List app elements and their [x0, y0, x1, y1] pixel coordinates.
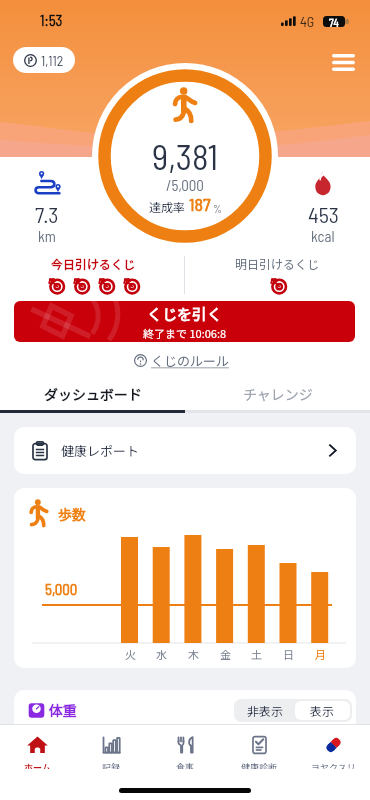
button[interactable]: 体重 [14, 690, 356, 750]
staticText: ヨヤクスリ [311, 761, 356, 769]
button[interactable]: 食事 [148, 735, 222, 769]
staticText: くじのルール [151, 351, 230, 370]
staticText: 火 [125, 646, 136, 662]
button[interactable]: 表示 [295, 701, 350, 720]
staticText: 日 [283, 646, 294, 662]
staticText: km [38, 227, 56, 245]
staticText: 4G [300, 13, 315, 28]
staticText: ホーム [24, 761, 51, 769]
staticText: チャレンジ [243, 384, 313, 404]
staticText: 歩数 [58, 504, 86, 524]
staticText: % [213, 202, 222, 215]
button[interactable]: ホーム [0, 735, 74, 769]
staticText: 木 [188, 646, 199, 662]
staticText: 453 [308, 201, 339, 227]
staticText: 土 [251, 646, 262, 662]
staticText: 体重 [49, 700, 77, 720]
button[interactable]: 健康診断 [222, 735, 296, 769]
staticText: 187 [189, 193, 211, 215]
staticText: 終了まで 10:06:8 [143, 325, 227, 341]
staticText: 7.3 [35, 201, 59, 227]
staticText: 非表示 [247, 702, 284, 719]
staticText: 1:53 [40, 11, 63, 28]
staticText: 明日引けるくじ [235, 255, 320, 272]
staticText: 5,000 [45, 580, 78, 598]
button[interactable]: くじのルール [134, 351, 230, 370]
staticText: 食事 [176, 761, 195, 769]
staticText: 月 [315, 646, 326, 662]
staticText: 記録 [102, 761, 121, 769]
button[interactable]: 非表示 [236, 701, 295, 720]
button[interactable]: くじを引く [14, 301, 355, 342]
staticText: 9,381 [152, 135, 219, 177]
staticText: 金 [220, 646, 231, 662]
button[interactable]: 歩数 [14, 488, 356, 668]
staticText: 今日引けるくじ [51, 255, 136, 272]
staticText: 1,112 [41, 52, 64, 69]
button[interactable]: ヨヤクスリ [296, 735, 370, 769]
staticText: kcal [311, 227, 335, 245]
staticText: 水 [156, 646, 167, 662]
staticText: 健康レポート [61, 441, 140, 460]
staticText: 表示 [310, 702, 335, 719]
staticText: ダッシュボード [44, 384, 142, 404]
staticText: 達成率 [149, 198, 186, 215]
staticText: くじを引く [147, 303, 223, 325]
button[interactable]: ダッシュボード [0, 378, 185, 410]
button[interactable]: 健康レポート [14, 427, 356, 474]
button[interactable]: 記録 [74, 735, 148, 769]
button[interactable]: Menu [326, 45, 360, 79]
staticText: 74 [329, 16, 339, 27]
staticText: 健康診断 [241, 761, 278, 769]
button[interactable]: チャレンジ [185, 378, 370, 410]
button[interactable]: 1,112 [13, 47, 75, 73]
staticText: /5,000 [166, 176, 204, 194]
